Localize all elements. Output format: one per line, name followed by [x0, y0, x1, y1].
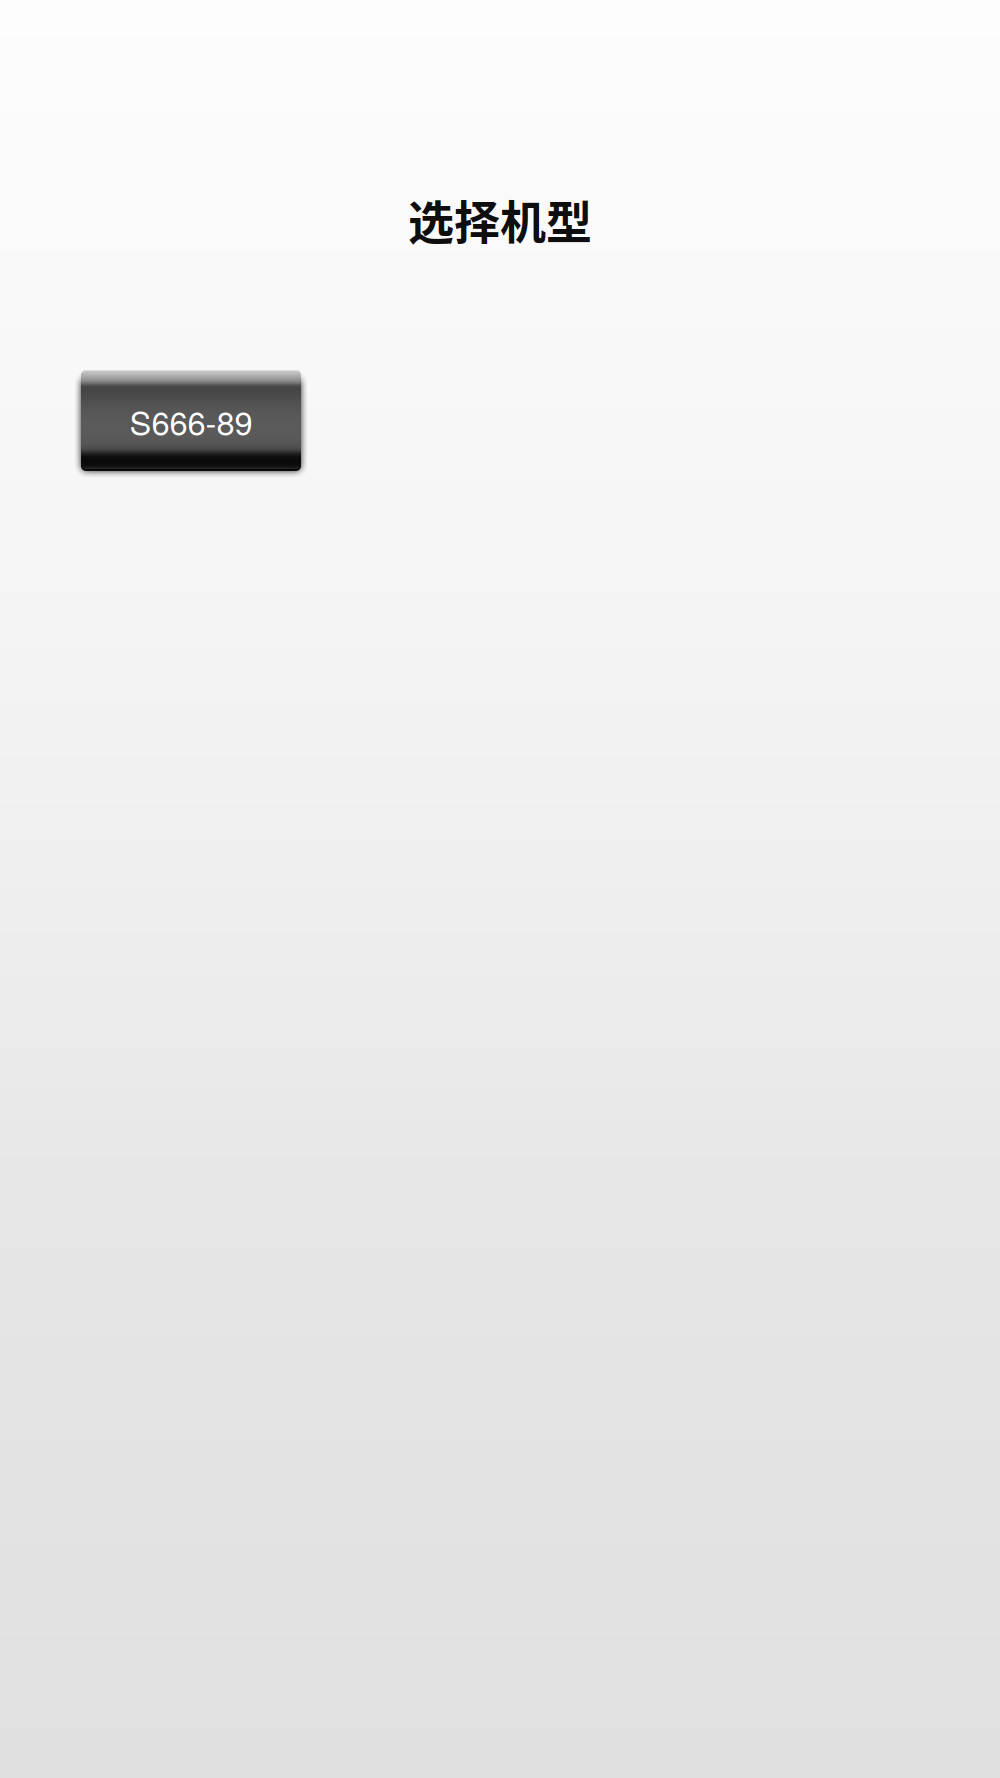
- button[interactable]: S666-89: [81, 370, 301, 469]
- staticText: 选择机型: [408, 186, 592, 252]
- staticText: S666-89: [129, 398, 252, 445]
